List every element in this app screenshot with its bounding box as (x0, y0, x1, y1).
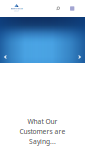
staticText: What Our (27, 117, 57, 126)
button[interactable]: Menu (68, 0, 77, 17)
button[interactable]: Search (54, 0, 63, 17)
staticText: MOUNTAIN VIEW (10, 8, 22, 10)
button[interactable]: Previous slide (0, 50, 11, 63)
staticText: Saying... (29, 137, 56, 146)
staticText: Customers are (19, 127, 65, 136)
button[interactable]: Next slide (74, 50, 85, 63)
button[interactable]: Mountain View Group home (0, 0, 25, 14)
staticText: GROUP (14, 10, 19, 12)
